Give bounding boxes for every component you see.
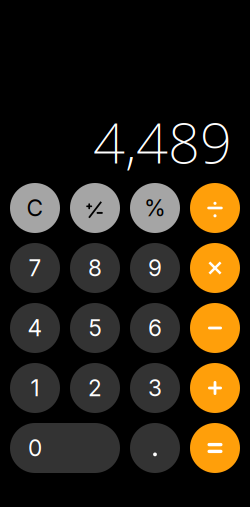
- button[interactable]: 4: [10, 303, 60, 353]
- button[interactable]: 1: [10, 363, 60, 413]
- button[interactable]: Subtract: [190, 303, 240, 353]
- staticText: 0: [28, 434, 42, 462]
- staticText: 7: [28, 254, 41, 282]
- button[interactable]: Multiply: [190, 243, 240, 293]
- staticText: 3: [148, 374, 162, 402]
- button[interactable]: 9: [130, 243, 180, 293]
- button[interactable]: Equals: [190, 423, 240, 473]
- button[interactable]: 3: [130, 363, 180, 413]
- button[interactable]: Toggle sign: [70, 183, 120, 233]
- button[interactable]: Decimal point: [130, 423, 180, 473]
- button[interactable]: 2: [70, 363, 120, 413]
- button[interactable]: C: [10, 183, 60, 233]
- staticText: 1: [30, 374, 39, 402]
- button[interactable]: 0: [10, 423, 120, 473]
- button[interactable]: Divide: [190, 183, 240, 233]
- button[interactable]: 5: [70, 303, 120, 353]
- staticText: 8: [88, 254, 102, 282]
- button[interactable]: 6: [130, 303, 180, 353]
- staticText: 6: [148, 314, 162, 342]
- staticText: 2: [88, 374, 102, 402]
- staticText: 4: [27, 314, 42, 342]
- button[interactable]: Add: [190, 363, 240, 413]
- staticText: 5: [88, 314, 101, 342]
- staticText: C: [26, 194, 43, 222]
- button[interactable]: %: [130, 183, 180, 233]
- staticText: 9: [148, 254, 162, 282]
- button[interactable]: 7: [10, 243, 60, 293]
- staticText: %: [144, 194, 166, 222]
- staticText: 4,489: [93, 105, 232, 179]
- button[interactable]: 8: [70, 243, 120, 293]
